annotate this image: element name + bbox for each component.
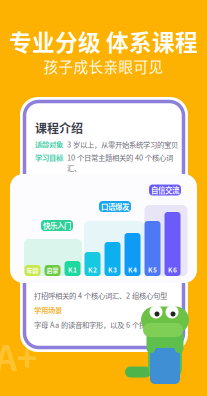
staticText: K2 (88, 265, 97, 274)
staticText: 课程介绍 (35, 119, 83, 136)
staticText: A+ (0, 331, 37, 381)
staticText: 字母 Aa 的读音和字形，以及 6 个拼读关联词 (34, 319, 174, 330)
staticText: K6 (168, 265, 177, 274)
staticText: 年龄 (26, 266, 38, 274)
staticText: 口语爆发 (101, 201, 129, 212)
staticText: 启蒙 (46, 266, 58, 274)
staticText: 专业分级 体系课程 (9, 25, 198, 57)
staticText: 学用场景 (34, 305, 62, 315)
staticText: 打招呼相关的 4 个核心词汇、2 组核心句型 (34, 290, 167, 301)
staticText: 10 个日常主题相关的 40 个核心词汇、 (67, 152, 173, 173)
staticText: 25 个辅音字母的名、音、形； (67, 175, 161, 185)
staticText: 3 岁以上，从零开始系统学习的宝贝 (67, 139, 178, 149)
staticText: 自信交流 (151, 185, 179, 195)
staticText: 快乐入门 (43, 220, 71, 231)
staticText: K1 (68, 265, 77, 274)
staticText: 孩子成长亲眼可见 (43, 55, 163, 77)
staticText: K5 (148, 265, 157, 274)
staticText: 适龄对象 (35, 139, 63, 149)
staticText: K3 (108, 265, 117, 274)
staticText: K4 (128, 265, 137, 274)
staticText: 学习目标 (35, 152, 63, 163)
